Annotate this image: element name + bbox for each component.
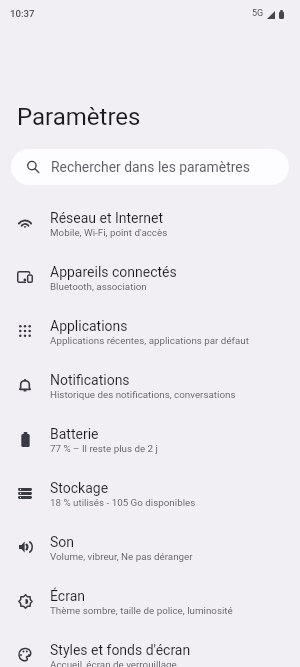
button[interactable]: Écran: [0, 574, 300, 628]
staticText: Applications récentes, applications par …: [50, 335, 249, 346]
staticText: Mobile, Wi-Fi, point d'accès: [50, 227, 168, 238]
staticText: 18 % utilisés - 105 Go disponibles: [50, 497, 196, 508]
staticText: Réseau et Internet: [50, 210, 164, 226]
staticText: Son: [50, 534, 75, 550]
staticText: Historique des notifications, conversati…: [50, 389, 236, 400]
staticText: Notifications: [50, 372, 130, 388]
staticText: Écran: [50, 588, 85, 604]
button[interactable]: Rechercher dans les paramètres: [11, 149, 289, 185]
button[interactable]: Notifications: [0, 358, 300, 412]
button[interactable]: Son: [0, 520, 300, 574]
staticText: 77 % – Il reste plus de 2 j: [50, 443, 158, 454]
button[interactable]: Styles et fonds d'écran: [0, 628, 300, 667]
staticText: Applications: [50, 318, 128, 334]
button[interactable]: Stockage: [0, 466, 300, 520]
staticText: Styles et fonds d'écran: [50, 642, 191, 658]
button[interactable]: Réseau et Internet: [0, 196, 300, 250]
button[interactable]: Appareils connectés: [0, 250, 300, 304]
staticText: Appareils connectés: [50, 264, 177, 280]
staticText: Stockage: [50, 480, 109, 496]
staticText: Paramètres: [17, 103, 141, 131]
button[interactable]: Batterie: [0, 412, 300, 466]
staticText: Volume, vibreur, Ne pas déranger: [50, 551, 193, 562]
staticText: Accueil, écran de verrouillage: [50, 659, 177, 667]
button[interactable]: Applications: [0, 304, 300, 358]
staticText: Bluetooth, association: [50, 281, 147, 292]
staticText: Batterie: [50, 426, 99, 442]
staticText: Rechercher dans les paramètres: [51, 159, 250, 175]
staticText: 10:37: [10, 8, 35, 19]
staticText: Thème sombre, taille de police, luminosi…: [50, 605, 233, 616]
staticText: 5G: [252, 8, 264, 19]
